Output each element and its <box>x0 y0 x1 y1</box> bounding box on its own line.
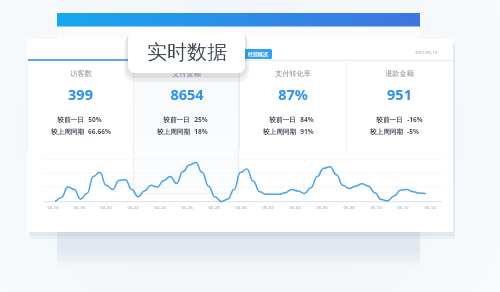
staticText: 50% <box>88 115 102 124</box>
staticText: 84% <box>300 115 314 124</box>
staticText: 2017-05-13 <box>415 50 437 56</box>
staticText: 04-28 <box>208 204 220 210</box>
staticText: 经营概况 <box>248 51 268 57</box>
staticText: 较前一日 <box>269 116 296 124</box>
staticText: 18% <box>194 127 208 136</box>
staticText: 访客数 <box>70 69 92 78</box>
staticText: 05-14 <box>424 204 436 210</box>
staticText: 04-26 <box>181 204 193 210</box>
staticText: 05-12 <box>397 204 409 210</box>
staticText: 04-16 <box>47 204 59 210</box>
staticText: 实时数据 <box>147 40 227 65</box>
staticText: 951 <box>387 84 412 104</box>
staticText: 较前一日 <box>163 116 190 124</box>
staticText: 退款金额 <box>385 69 414 78</box>
staticText: 25% <box>194 115 208 124</box>
staticText: 91% <box>300 127 314 136</box>
staticText: 05-04 <box>289 204 301 210</box>
staticText: 较前一日 <box>376 116 403 124</box>
staticText: 支付转化率 <box>275 69 311 78</box>
button[interactable]: 访客数 <box>27 61 133 154</box>
staticText: 8654 <box>170 84 204 104</box>
staticText: 04-20 <box>100 204 112 210</box>
staticText: 87% <box>278 84 308 104</box>
staticText: 05-06 <box>316 204 328 210</box>
button[interactable]: 经营概况 <box>244 49 272 59</box>
staticText: 04-30 <box>235 204 247 210</box>
staticText: 较上周同期 <box>263 128 296 136</box>
staticText: 较上周同期 <box>157 128 190 136</box>
staticText: 399 <box>68 84 93 104</box>
button[interactable]: 退款金额 <box>346 61 453 154</box>
staticText: 较前一日 <box>57 116 84 124</box>
staticText: 较上周同期 <box>51 128 84 136</box>
staticText: 较上周同期 <box>370 128 403 136</box>
button[interactable]: 支付金额 <box>133 61 239 154</box>
staticText: -5% <box>407 127 419 136</box>
staticText: 05-08 <box>343 204 355 210</box>
button[interactable]: 实时数据 <box>128 31 245 73</box>
staticText: 66.66% <box>88 127 111 136</box>
staticText: 04-22 <box>127 204 139 210</box>
staticText: 05-10 <box>370 204 382 210</box>
staticText: 04-18 <box>73 204 85 210</box>
staticText: 04-24 <box>154 204 166 210</box>
staticText: -16% <box>407 115 423 124</box>
staticText: 05-02 <box>262 204 274 210</box>
button[interactable]: 支付转化率 <box>239 61 346 154</box>
staticText: 支付金额 <box>172 69 201 78</box>
